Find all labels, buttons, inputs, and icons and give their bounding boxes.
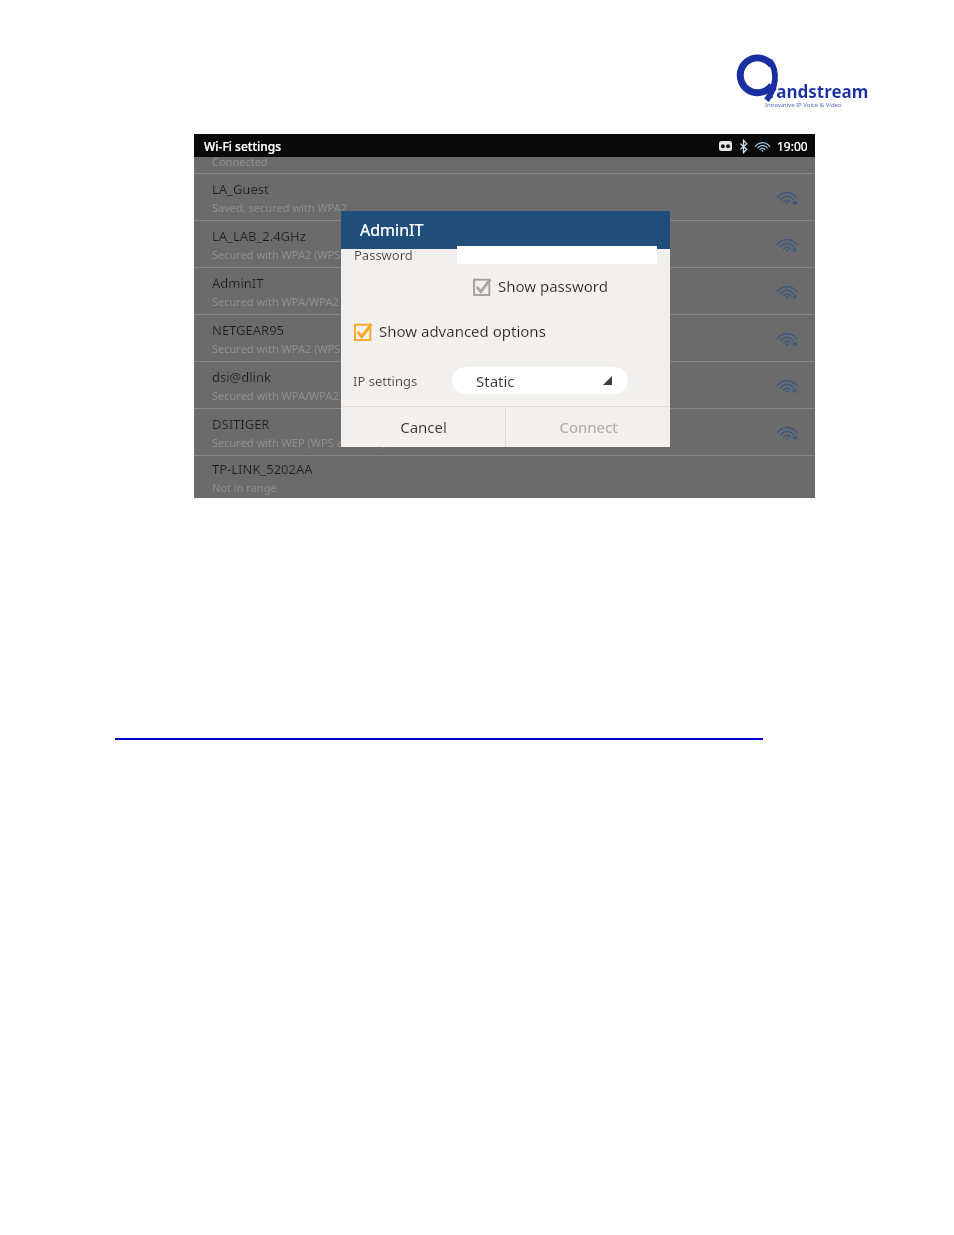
staticText: Password [354,246,413,264]
button[interactable]: dsi@dlink [194,362,815,408]
other: Wi-Fi signal [777,189,797,205]
button[interactable]: LA_LAB_2.4GHz [194,221,815,267]
other: Wi-Fi signal [777,330,797,346]
button[interactable]: Show password [474,276,608,296]
button[interactable]: Cancel [341,407,505,447]
staticText: Show advanced options [379,321,546,341]
staticText: Secured with WPA2 (WPS available) [212,341,393,356]
staticText: TP-LINK_5202AA [212,460,313,478]
staticText: Secured with WEP (WPS available) [212,435,386,450]
staticText: LA_Guest [212,180,269,198]
staticText: Wi-Fi settings [204,138,282,154]
button[interactable]: AdminIT [194,268,815,314]
button[interactable]: Connect [506,407,670,447]
other: Wi-Fi signal [777,283,797,299]
other: Wi-Fi signal [777,424,797,440]
staticText: Not in range [212,480,277,495]
other: Voicemail [719,141,732,151]
staticText: Secured with WPA2 (WPS available) [212,247,393,262]
button[interactable]: NETGEAR95 [194,315,815,361]
staticText: Innovative IP Voice & Video [765,101,842,109]
button[interactable]: DSITIGER [194,409,815,455]
other: Wi-Fi signal [777,377,797,393]
staticText: 19:00 [777,138,808,154]
staticText: AdminIT [212,274,264,292]
staticText: Secured with WPA/WPA2 [212,294,339,309]
staticText: LA_LAB_2.4GHz [212,227,306,245]
staticText: Connect [559,417,618,437]
button[interactable]: LA_Guest [194,174,815,220]
staticText: randstream [769,80,869,103]
other: Wi-Fi signal [755,140,770,152]
staticText: IP settings [353,372,418,390]
button[interactable]: Show advanced options [355,321,546,341]
staticText: Secured with WPA/WPA2 [212,388,339,403]
button[interactable]: TP-LINK_5202AA [194,456,815,498]
staticText: Static [476,371,515,391]
other: Bluetooth [739,140,748,153]
button[interactable]: Static [452,367,628,394]
staticText: NETGEAR95 [212,321,285,339]
staticText: Connected [212,154,268,169]
staticText: Show password [498,276,608,296]
staticText: Saved, secured with WPA2 [212,200,348,215]
staticText: AdminIT [360,219,424,241]
staticText: DSITIGER [212,415,270,433]
other: Wi-Fi signal [777,236,797,252]
staticText: dsi@dlink [212,368,271,386]
staticText: Cancel [400,417,447,437]
